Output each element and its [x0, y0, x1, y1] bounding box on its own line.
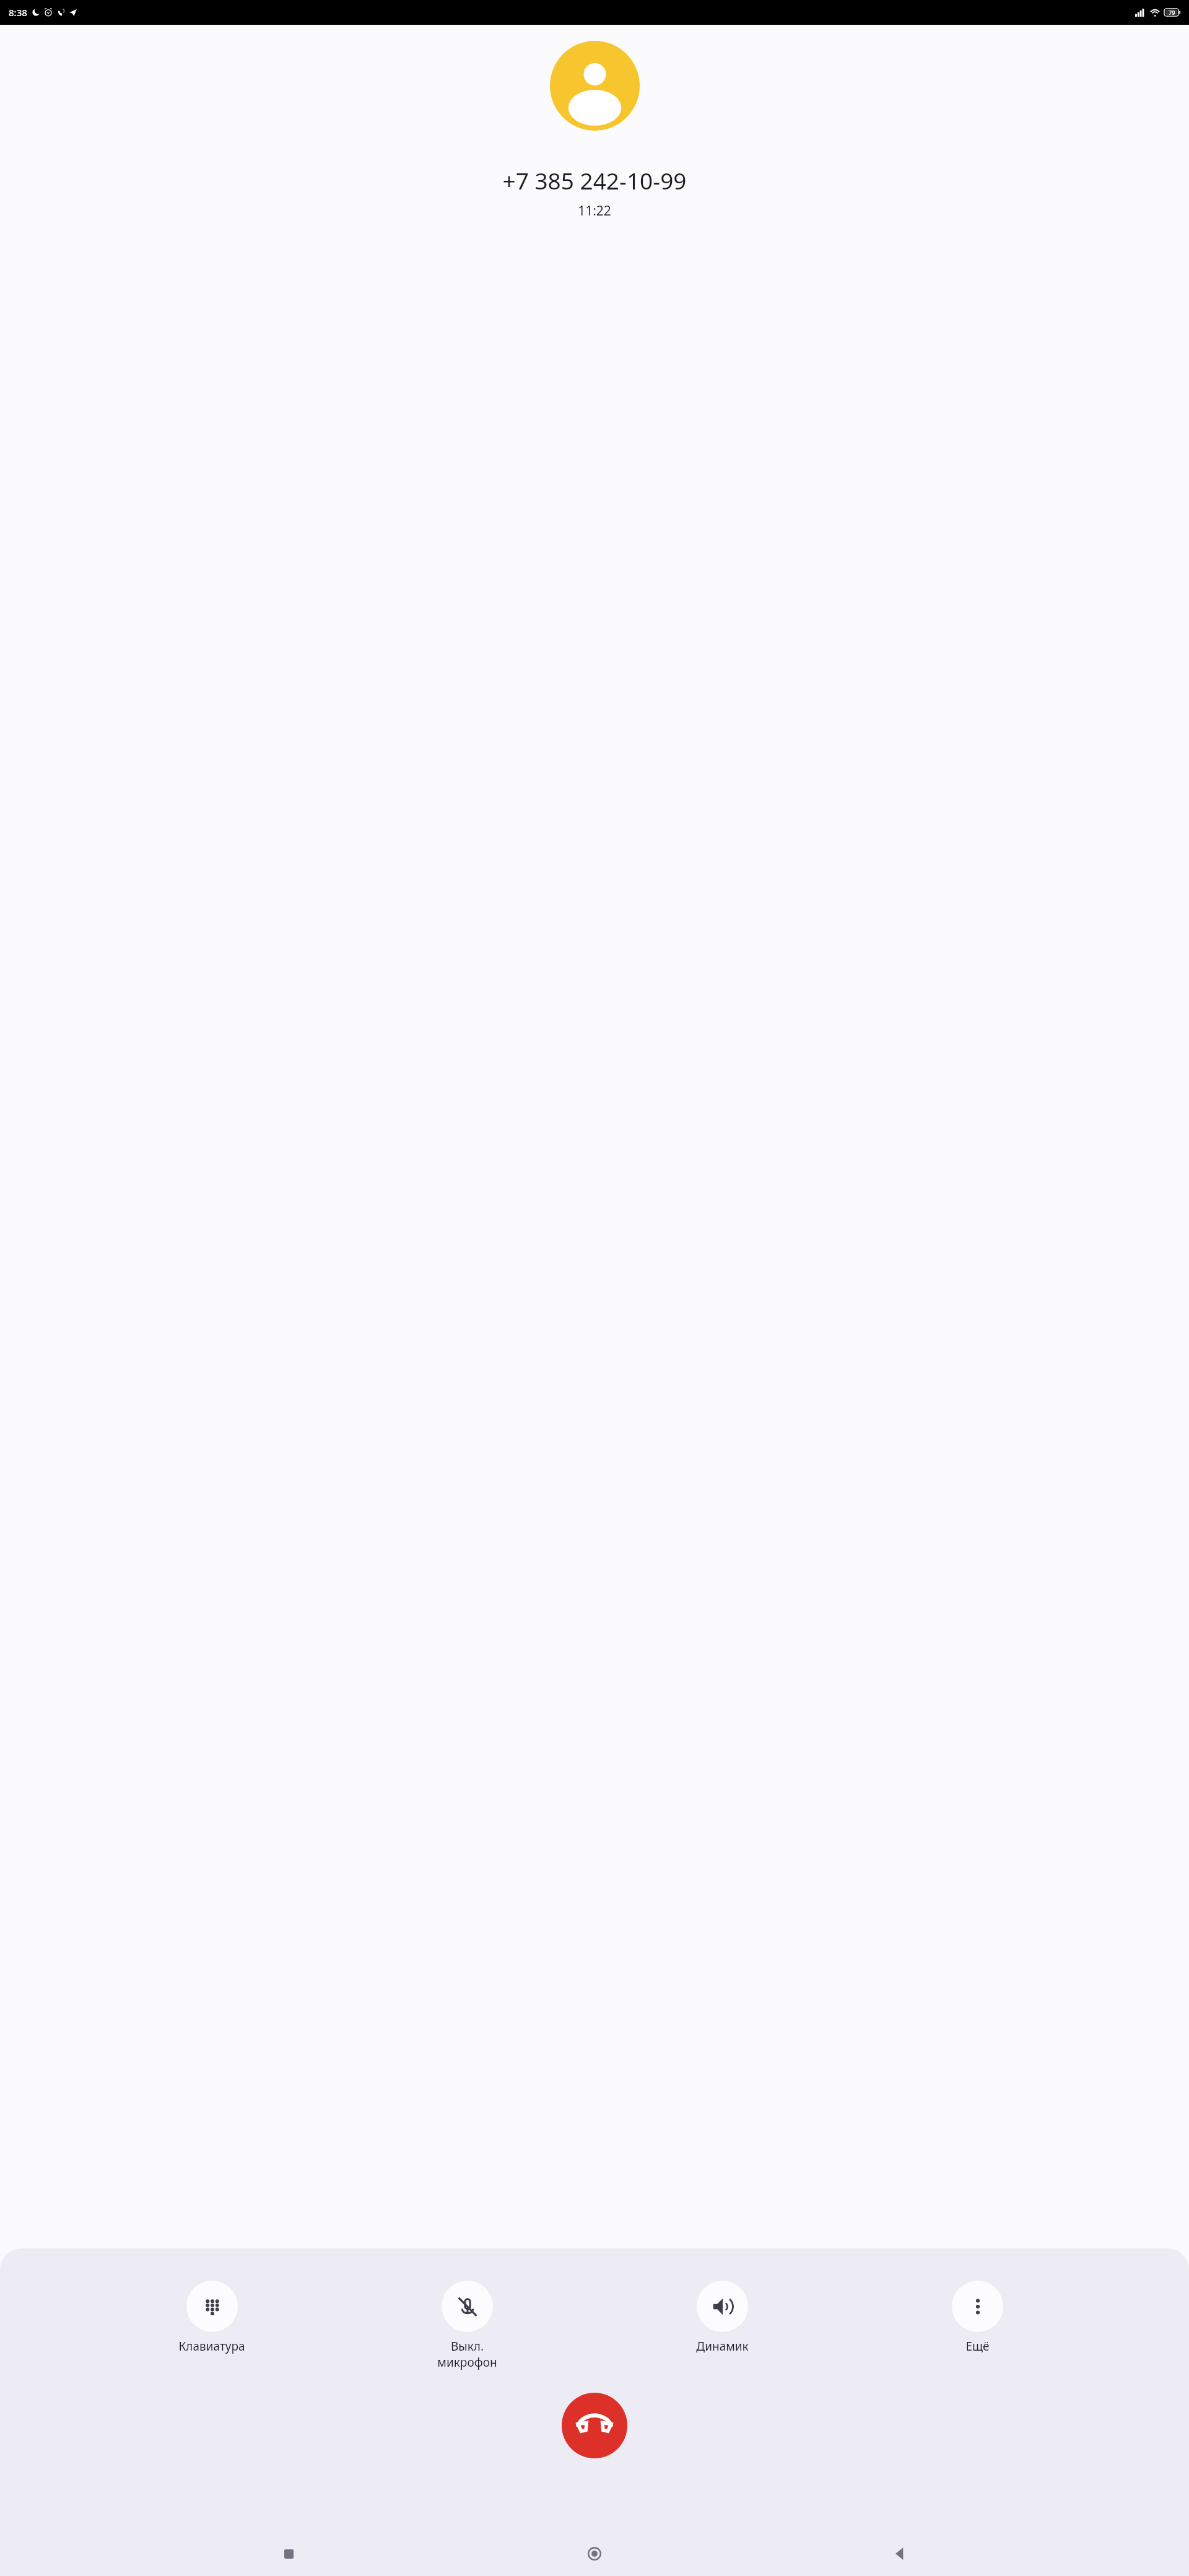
button[interactable]: Завершить вызов	[562, 2393, 627, 2458]
button[interactable]: Клавиатура	[168, 2281, 255, 2354]
staticText: Клавиатура	[178, 2338, 245, 2354]
staticText: Выкл. микрофон	[437, 2338, 497, 2370]
button[interactable]: Главный экран	[577, 2536, 612, 2571]
staticText: Ещё	[965, 2338, 990, 2354]
staticText: +7 385 242-10-99	[502, 165, 687, 196]
button[interactable]: Недавние	[271, 2536, 306, 2571]
staticText: 79	[1169, 9, 1175, 16]
button[interactable]: Динамик	[679, 2281, 765, 2354]
staticText: 11:22	[578, 202, 611, 220]
button[interactable]: Ещё	[934, 2281, 1021, 2354]
button[interactable]: Выкл. микрофон	[424, 2281, 510, 2370]
staticText: 8:38	[9, 6, 27, 19]
staticText: Динамик	[696, 2338, 749, 2354]
button[interactable]: Назад	[883, 2536, 918, 2571]
